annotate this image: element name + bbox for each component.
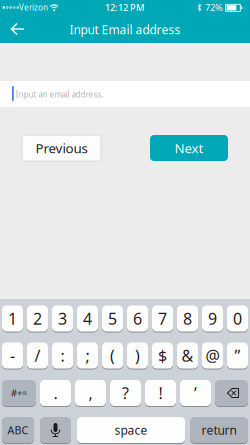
staticText: ( [110, 345, 115, 366]
staticText: ” [234, 345, 240, 366]
staticText: Verizon [19, 2, 48, 13]
staticText: 12:12 PM [105, 1, 145, 14]
staticText: 6 [133, 308, 142, 329]
button[interactable]: Next [150, 135, 228, 161]
staticText: Input an email address. [15, 89, 103, 100]
staticText: / [34, 345, 40, 366]
staticText: @ [205, 345, 219, 366]
staticText: Input Email address [69, 21, 180, 37]
button[interactable]: return [190, 417, 248, 443]
staticText: $ [158, 345, 167, 366]
button[interactable]: 6 [127, 305, 148, 331]
button[interactable]: 7 [152, 305, 173, 331]
button[interactable] [2, 14, 32, 44]
button[interactable]: 1 [2, 305, 23, 331]
staticText: Previous [35, 139, 87, 157]
button[interactable]: - [2, 342, 23, 368]
button[interactable]: Input an email address. [0, 81, 250, 107]
staticText: #+= [11, 387, 27, 399]
staticText: 3 [58, 308, 67, 329]
button[interactable]: 4 [77, 305, 98, 331]
button[interactable]: ” [227, 342, 248, 368]
button[interactable] [215, 380, 248, 406]
staticText: ; [85, 345, 89, 366]
button[interactable]: ( [102, 342, 123, 368]
button[interactable]: ? [110, 380, 141, 406]
staticText: ’ [194, 382, 197, 404]
staticText: : [60, 345, 64, 366]
staticText: 72% [205, 1, 223, 14]
staticText: Next [174, 139, 203, 157]
staticText: 2 [33, 308, 42, 329]
staticText: ? [122, 382, 129, 404]
staticText: 4 [83, 308, 92, 329]
button[interactable]: , [75, 380, 106, 406]
button[interactable]: 0 [227, 305, 248, 331]
button[interactable]: 8 [177, 305, 198, 331]
button[interactable]: $ [152, 342, 173, 368]
staticText: 0 [233, 308, 242, 329]
staticText: 8 [183, 308, 192, 329]
button[interactable]: @ [202, 342, 223, 368]
staticText: & [181, 345, 193, 366]
button[interactable]: 3 [52, 305, 73, 331]
button[interactable]: & [177, 342, 198, 368]
staticText: , [88, 382, 92, 404]
button[interactable]: #+= [2, 380, 36, 406]
staticText: ! [158, 382, 162, 404]
button[interactable]: ABC [2, 417, 34, 443]
button[interactable]: : [52, 342, 73, 368]
staticText: - [10, 345, 15, 366]
staticText: 9 [208, 308, 217, 329]
staticText: return [201, 422, 236, 438]
button[interactable]: ) [127, 342, 148, 368]
staticText: 5 [108, 308, 117, 329]
staticText: space [114, 422, 147, 438]
staticText: 1 [8, 308, 17, 329]
staticText: ABC [7, 423, 28, 437]
button[interactable]: space [77, 417, 185, 443]
button[interactable]: ’ [180, 380, 211, 406]
button[interactable]: . [40, 380, 71, 406]
button[interactable]: 2 [27, 305, 48, 331]
button[interactable]: Previous [22, 135, 101, 161]
button[interactable]: 5 [102, 305, 123, 331]
button[interactable] [40, 417, 71, 443]
staticText: 7 [158, 308, 167, 329]
staticText: ) [135, 345, 140, 366]
button[interactable]: ! [145, 380, 176, 406]
staticText: . [53, 382, 57, 404]
button[interactable]: ; [77, 342, 98, 368]
button[interactable]: 9 [202, 305, 223, 331]
button[interactable]: / [27, 342, 48, 368]
